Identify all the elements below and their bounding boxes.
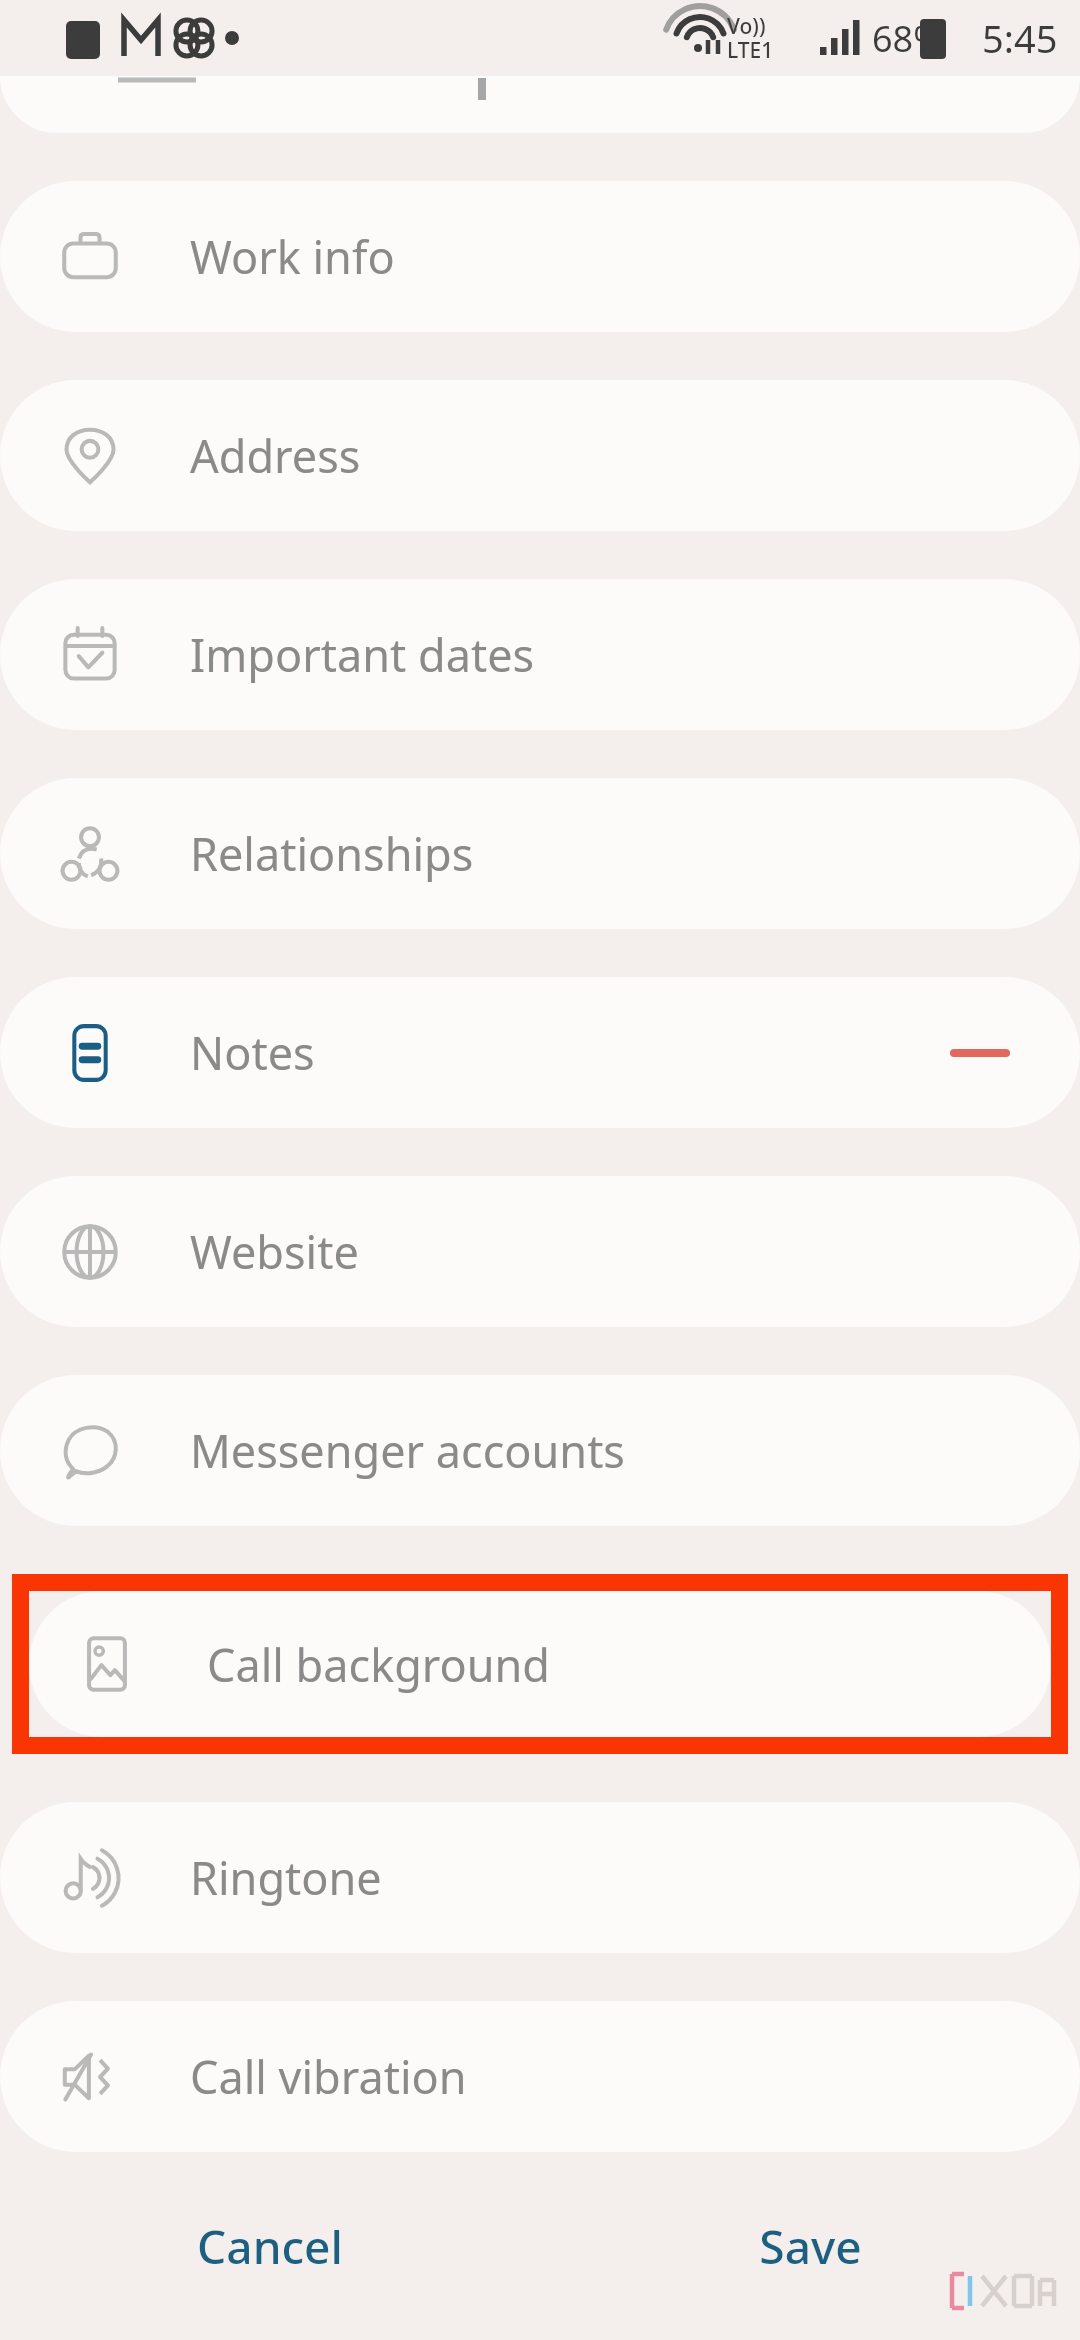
staticText: Save [759, 2215, 862, 2278]
button[interactable]: Address [0, 380, 1080, 531]
button[interactable]: Save [540, 2152, 1080, 2340]
staticText: Call background [207, 1634, 551, 1695]
staticText: Relationships [190, 823, 474, 884]
button[interactable]: Important dates [0, 579, 1080, 730]
staticText: Address [190, 425, 361, 486]
button[interactable]: Call vibration [0, 2001, 1080, 2152]
staticText: Ringtone [190, 1847, 382, 1908]
button[interactable]: Call background [29, 1591, 1051, 1737]
staticText: LTE1 [727, 36, 774, 65]
staticText: Call vibration [190, 2046, 467, 2107]
button[interactable]: Messenger accounts [0, 1375, 1080, 1526]
staticText: Vo)) [727, 12, 766, 41]
button[interactable]: Work info [0, 181, 1080, 332]
staticText: Work info [190, 226, 395, 287]
staticText: Important dates [190, 624, 535, 685]
button[interactable]: Relationships [0, 778, 1080, 929]
button[interactable]: Ringtone [0, 1802, 1080, 1953]
staticText: 68% [872, 14, 944, 63]
staticText: 5:45 [982, 12, 1058, 64]
staticText: Messenger accounts [190, 1420, 625, 1481]
staticText: Website [190, 1221, 359, 1282]
button[interactable]: Notes [0, 977, 1080, 1128]
button[interactable]: Website [0, 1176, 1080, 1327]
staticText: Cancel [197, 2215, 343, 2278]
staticText: Notes [190, 1022, 315, 1083]
button[interactable] [0, 76, 1080, 133]
button[interactable]: Cancel [0, 2152, 540, 2340]
button[interactable]: Remove Notes [944, 1017, 1016, 1089]
